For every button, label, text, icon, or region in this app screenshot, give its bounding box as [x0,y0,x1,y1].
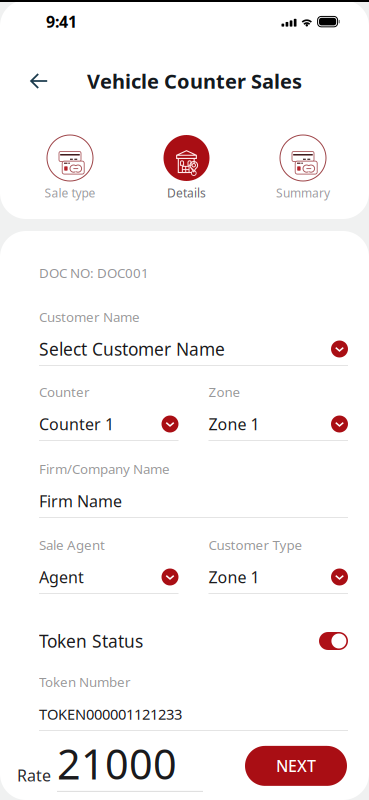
staticText: Zone 1 [208,566,259,588]
staticText: Firm/Company Name [39,460,170,478]
staticText: Agent [39,566,84,588]
staticText: 9:41 [46,11,77,32]
staticText: Select Customer Name [39,337,225,360]
staticText: Sale Agent [39,536,105,554]
staticText: Vehicle Counter Sales [87,68,302,94]
button[interactable]: Open picker [331,568,348,585]
staticText: 21000 [57,736,177,791]
button[interactable]: Back [20,62,58,100]
staticText: TOKEN000001121233 [39,704,182,724]
staticText: DOC NO: DOC001 [39,264,149,282]
staticText: Token Status [39,629,143,652]
staticText: NEXT [276,755,316,776]
staticText: Zone [208,383,240,401]
staticText: Sale type [44,185,95,201]
staticText: Firm Name [39,490,122,512]
button[interactable]: Open picker [331,340,348,357]
button[interactable]: Open picker [331,415,348,432]
button[interactable]: NEXT [245,746,347,786]
staticText: Counter [39,383,90,401]
button[interactable]: Summary [259,135,347,201]
button[interactable]: Open picker [161,415,178,432]
button[interactable]: Open picker [161,568,178,585]
staticText: Summary [276,185,330,201]
staticText: Customer Name [39,308,140,326]
button[interactable]: Token Status [319,632,348,650]
staticText: Zone 1 [208,413,259,435]
button[interactable]: Details [142,135,230,201]
staticText: Rate [17,765,51,786]
staticText: Token Number [39,673,131,691]
button[interactable]: Sale type [26,135,114,201]
staticText: Counter 1 [39,413,114,435]
staticText: Customer Type [208,536,302,554]
staticText: Details [167,185,206,201]
